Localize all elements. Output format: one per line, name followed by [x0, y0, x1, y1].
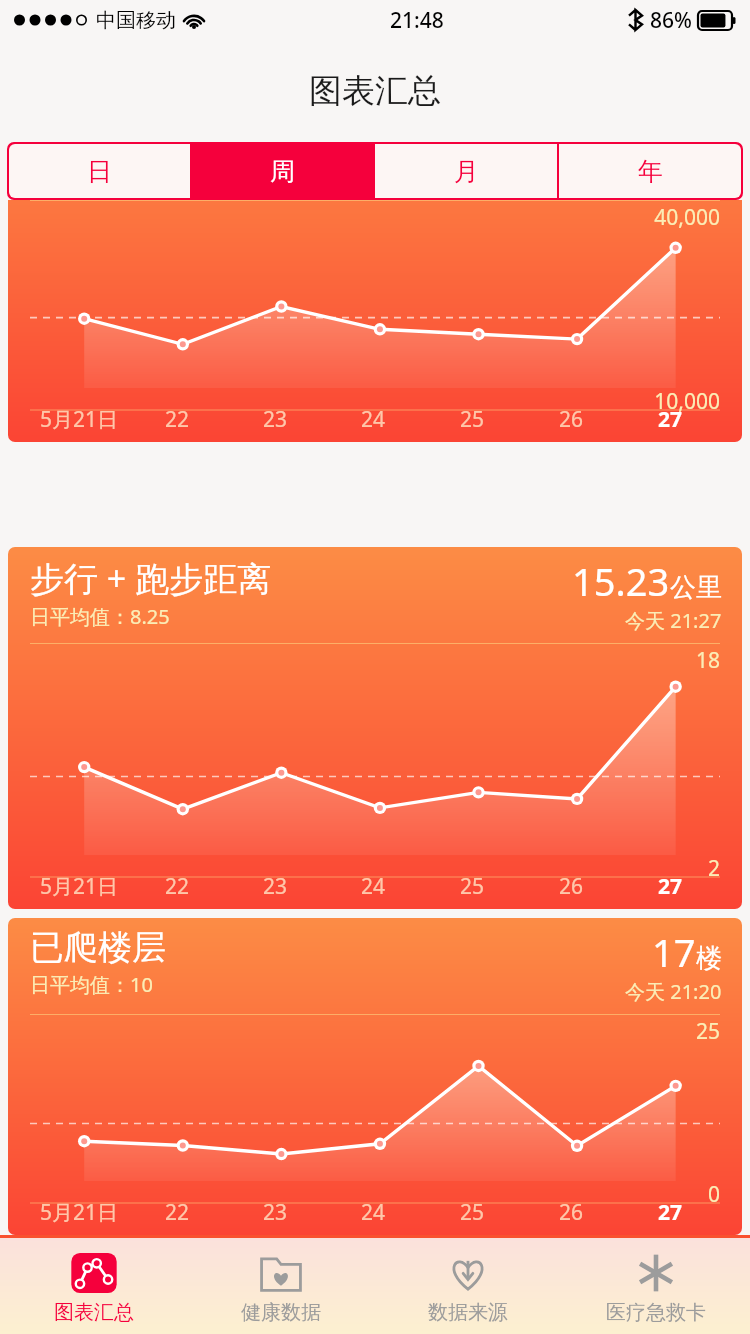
staticText: 17 — [652, 926, 696, 978]
button[interactable]: 健康数据 — [187, 1238, 374, 1334]
staticText: 日 — [87, 156, 112, 187]
staticText: 今天 21:20 — [625, 978, 722, 1005]
staticText: 26 — [559, 405, 584, 434]
staticText: 22 — [165, 872, 190, 901]
staticText: 5月21日 — [40, 1198, 119, 1227]
staticText: 24 — [361, 872, 386, 901]
staticText: 中国移动 — [96, 8, 176, 33]
button[interactable]: 已爬楼层 — [8, 918, 742, 1235]
staticText: 25 — [460, 872, 485, 901]
button[interactable]: 月 — [375, 144, 557, 198]
staticText: 15.23 — [572, 555, 670, 607]
staticText: 5月21日 — [40, 405, 119, 434]
staticText: 步行 + 跑步距离 — [30, 555, 272, 601]
staticText: 27 — [658, 872, 683, 901]
button[interactable]: 图表汇总 — [0, 1238, 187, 1334]
staticText: 24 — [361, 1198, 386, 1227]
staticText: 已爬楼层 — [30, 926, 166, 969]
staticText: 5月21日 — [40, 872, 119, 901]
staticText: 18 — [30, 646, 720, 675]
staticText: 图表汇总 — [309, 70, 441, 112]
staticText: 2 — [30, 854, 720, 883]
staticText: 25 — [460, 1198, 485, 1227]
staticText: 年 — [638, 156, 663, 187]
staticText: 22 — [165, 405, 190, 434]
staticText: 月 — [454, 156, 479, 187]
staticText: 25 — [30, 1017, 720, 1046]
staticText: 27 — [658, 1198, 683, 1227]
staticText: 楼 — [696, 942, 722, 975]
staticText: 26 — [559, 1198, 584, 1227]
staticText: 0 — [30, 1180, 720, 1209]
staticText: 40,000 — [30, 203, 720, 232]
staticText: 23 — [263, 405, 288, 434]
button[interactable]: 日 — [9, 144, 190, 198]
staticText: 86% — [650, 6, 692, 35]
staticText: 23 — [263, 872, 288, 901]
staticText: 公里 — [670, 571, 722, 604]
staticText: 10,000 — [30, 387, 720, 416]
staticText: 数据来源 — [428, 1300, 508, 1325]
staticText: 27 — [658, 405, 683, 434]
staticText: 25 — [460, 405, 485, 434]
staticText: 22 — [165, 1198, 190, 1227]
staticText: 24 — [361, 405, 386, 434]
staticText: 今天 21:27 — [625, 607, 722, 634]
button[interactable]: 周 — [192, 144, 373, 198]
staticText: 21:48 — [390, 6, 444, 35]
button[interactable]: 医疗急救卡 — [562, 1238, 750, 1334]
staticText: 日平均值：10 — [30, 971, 153, 998]
button[interactable]: 数据来源 — [374, 1238, 562, 1334]
staticText: 医疗急救卡 — [606, 1300, 706, 1325]
button[interactable]: 步行 + 跑步距离 — [8, 547, 742, 909]
staticText: 图表汇总 — [54, 1300, 134, 1325]
staticText: 健康数据 — [241, 1300, 321, 1325]
button[interactable]: 年 — [559, 144, 741, 198]
staticText: 周 — [270, 156, 295, 187]
button[interactable]: 步数 — [8, 200, 742, 442]
staticText: 23 — [263, 1198, 288, 1227]
staticText: 日平均值：8.25 — [30, 603, 170, 630]
staticText: 26 — [559, 872, 584, 901]
